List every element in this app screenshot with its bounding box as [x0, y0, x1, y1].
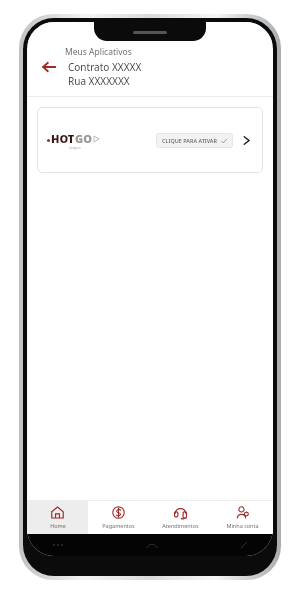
staticText: Atendimentos [162, 522, 199, 529]
button[interactable]: Minha conta [211, 501, 273, 534]
button[interactable]: HOT [37, 107, 263, 173]
staticText: Minha conta [226, 522, 259, 529]
staticText: Pagamentos [102, 522, 135, 529]
staticText: Contrato XXXXX [68, 60, 142, 74]
staticText: Home [50, 522, 66, 529]
staticText: GO [75, 131, 92, 146]
button[interactable]: CLIQUE PARA ATIVAR [156, 133, 233, 148]
staticText: CLIQUE PARA ATIVAR [162, 137, 217, 144]
button[interactable]: Voltar [37, 55, 61, 79]
staticText: HOT [51, 131, 75, 146]
button[interactable]: Abrir [239, 133, 253, 147]
button[interactable]: Home [27, 501, 88, 534]
button[interactable]: Atendimentos [149, 501, 211, 534]
staticText: Meus Aplicativos [65, 46, 132, 58]
button[interactable]: Pagamentos [88, 501, 149, 534]
staticText: Rua XXXXXXX [68, 74, 130, 88]
staticText: hotgo.tv [69, 146, 81, 150]
